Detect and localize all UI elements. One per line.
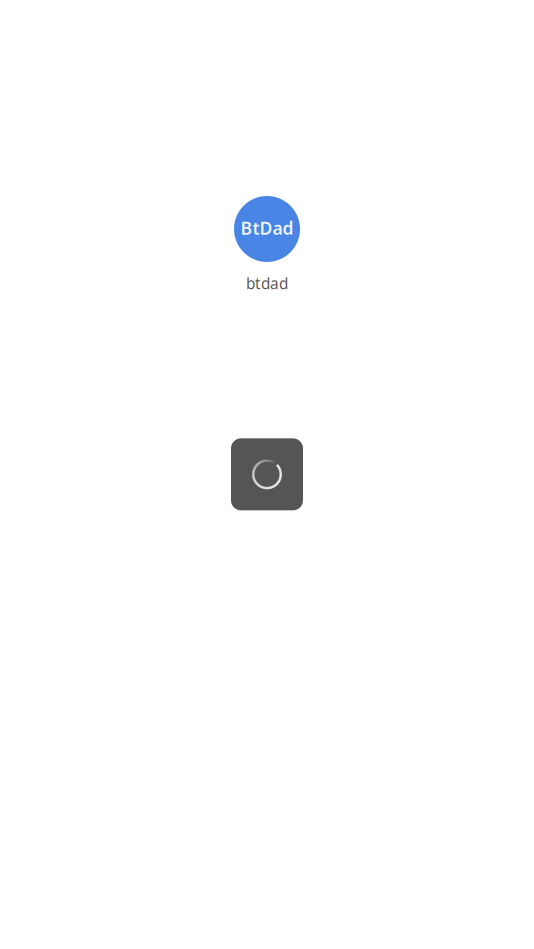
staticText: btdad (246, 273, 288, 293)
button[interactable]: BtDad (219, 196, 315, 293)
staticText: BtDad (240, 216, 293, 240)
